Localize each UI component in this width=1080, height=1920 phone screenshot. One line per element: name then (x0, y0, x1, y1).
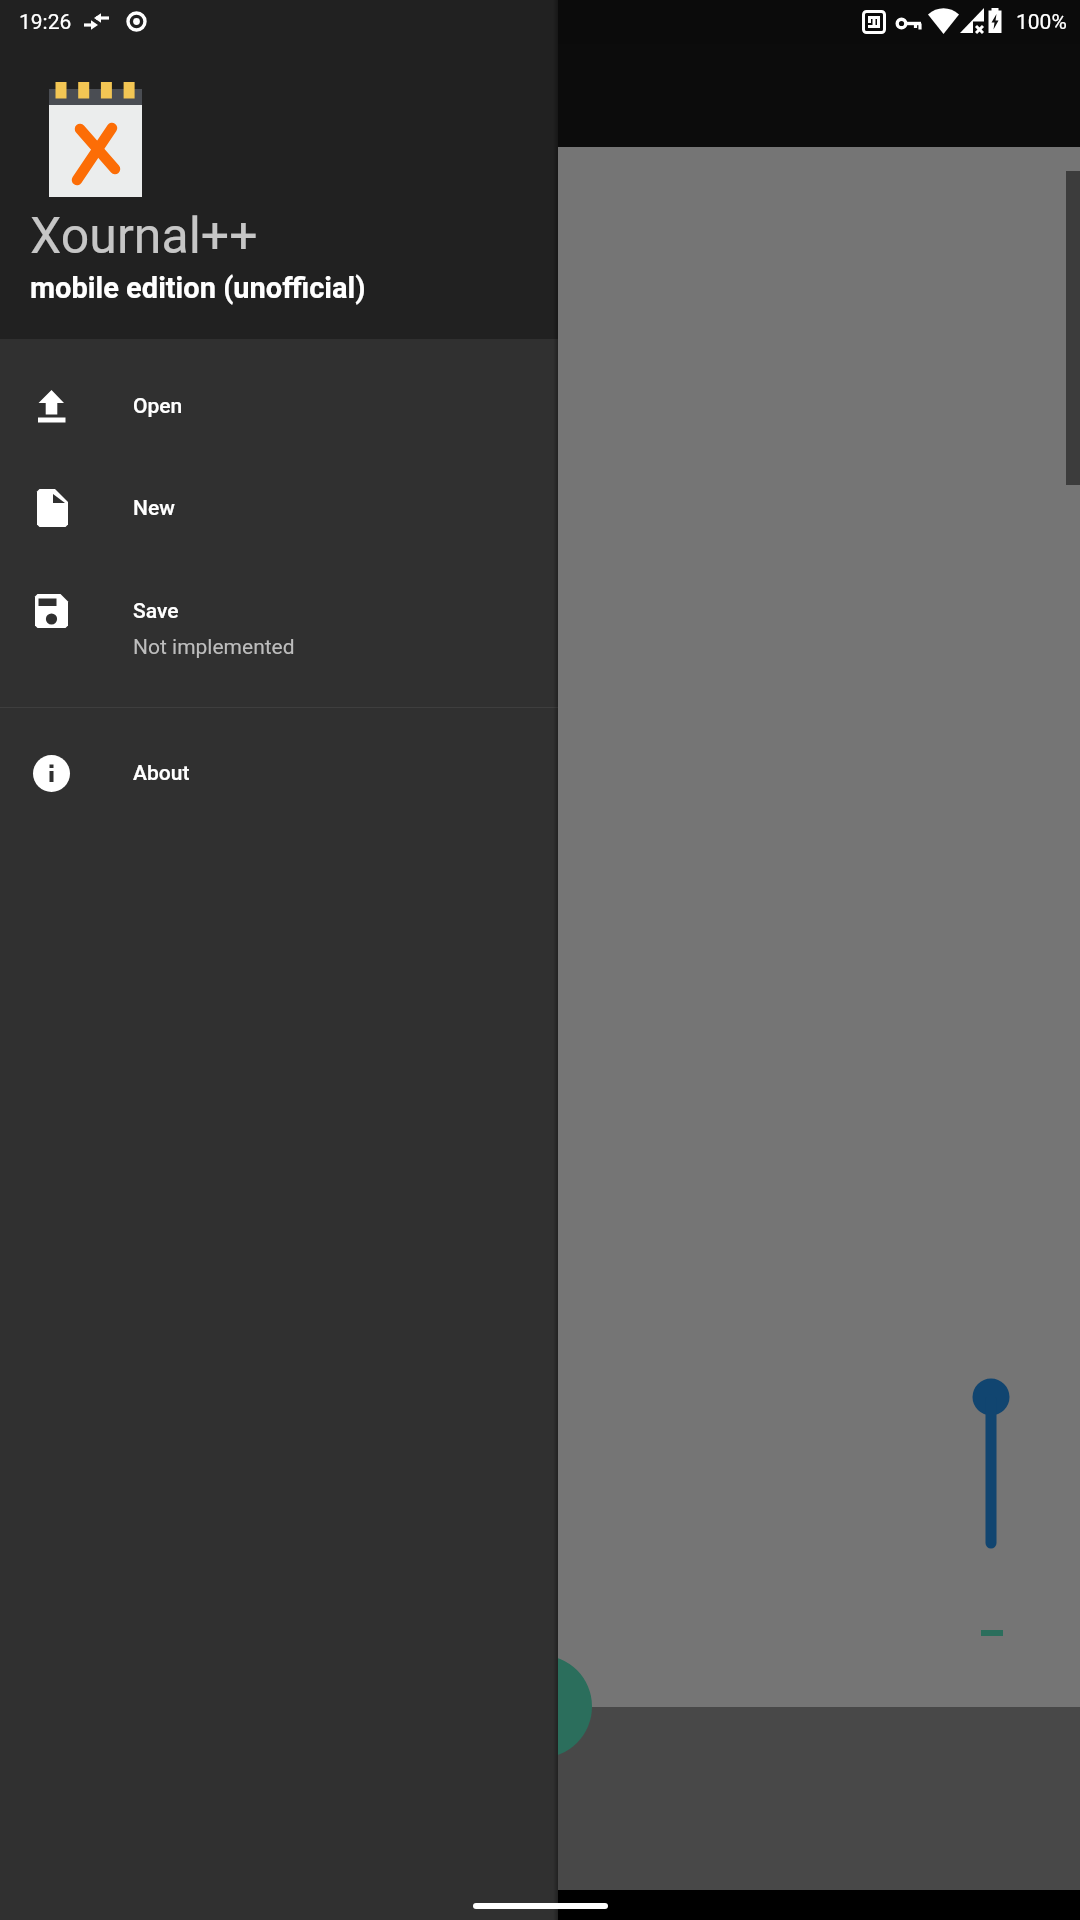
button[interactable]: Save (0, 558, 558, 707)
staticText: 19:26 (19, 10, 72, 35)
button[interactable]: Open (0, 354, 558, 456)
staticText: Xournal++ (30, 207, 258, 266)
staticText: 100% (1016, 10, 1067, 35)
staticText: mobile edition (unofficial) (30, 271, 366, 305)
button[interactable]: About (0, 708, 558, 810)
staticText: New (133, 496, 175, 521)
staticText: About (133, 761, 190, 786)
button[interactable]: New page (489, 1655, 592, 1758)
button[interactable]: New (0, 456, 558, 558)
staticText: Open (133, 394, 183, 419)
staticText: Save (133, 599, 179, 624)
staticText: Not implemented (133, 635, 295, 660)
